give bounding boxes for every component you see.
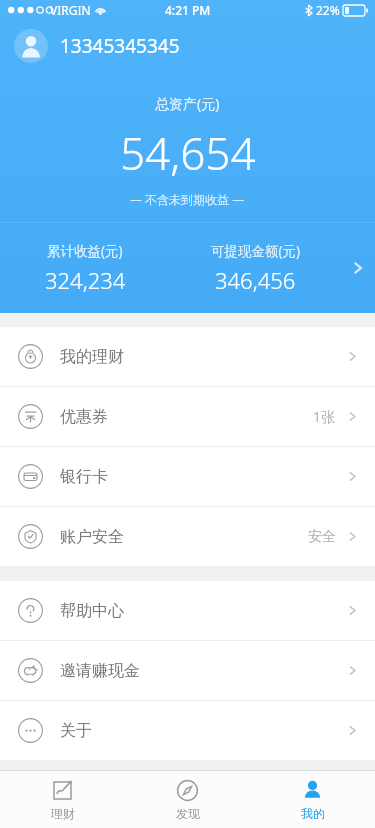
staticText: 13345345345 (60, 33, 180, 59)
staticText: 总资产(元) (155, 94, 220, 113)
staticText: 安全 (308, 528, 336, 546)
staticText: 累计收益(元) (47, 242, 123, 260)
button[interactable]: 邀请赚现金 (0, 641, 375, 701)
button[interactable]: 理财 (0, 771, 125, 828)
staticText: 账户安全 (60, 527, 124, 547)
button[interactable]: 13345345345 (0, 20, 375, 72)
button[interactable]: 我的 (250, 771, 375, 828)
button[interactable]: 关于 (0, 701, 375, 760)
staticText: 可提现金额(元) (211, 242, 301, 260)
staticText: 346,456 (215, 265, 296, 295)
staticText: 22% (316, 2, 340, 18)
button[interactable]: 我的理财 (0, 327, 375, 387)
staticText: 发现 (176, 806, 200, 821)
staticText: 银行卡 (60, 467, 108, 487)
button[interactable]: 帮助中心 (0, 581, 375, 641)
button[interactable]: 发现 (125, 771, 250, 828)
button[interactable]: 累计收益(元) (0, 223, 375, 313)
staticText: 邀请赚现金 (60, 661, 140, 681)
staticText: — 不含未到期收益 — (130, 191, 245, 207)
staticText: 我的理财 (60, 347, 124, 367)
button[interactable]: 优惠券 (0, 387, 375, 447)
staticText: 324,234 (45, 265, 126, 295)
staticText: 1张 (313, 407, 336, 426)
staticText: 理财 (51, 806, 75, 821)
staticText: 54,654 (120, 123, 256, 183)
staticText: 我的 (301, 806, 325, 821)
staticText: 帮助中心 (60, 601, 124, 621)
button[interactable]: 账户安全 (0, 507, 375, 566)
staticText: 关于 (60, 721, 92, 741)
staticText: 4:21 PM (165, 2, 211, 18)
button[interactable]: 银行卡 (0, 447, 375, 507)
staticText: VIRGIN (50, 2, 91, 18)
staticText: 优惠券 (60, 407, 108, 427)
